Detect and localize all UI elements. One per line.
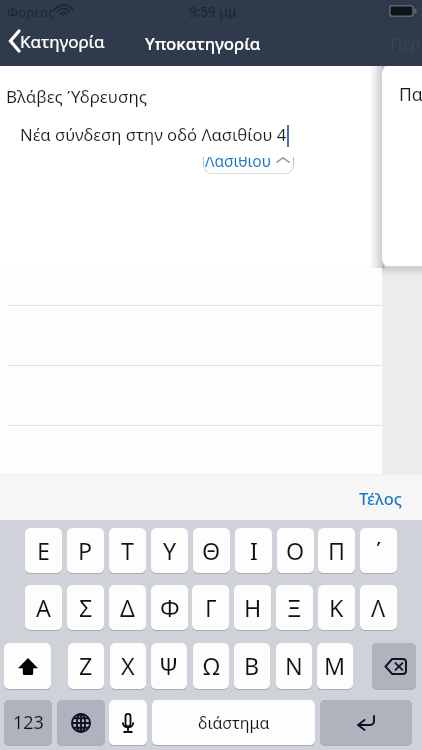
button[interactable]: [4, 643, 51, 689]
button[interactable]: Λ: [360, 585, 397, 630]
button[interactable]: Κ: [318, 585, 355, 630]
button[interactable]: διάστημα: [152, 700, 315, 745]
staticText: Τ: [121, 535, 134, 567]
staticText: Υποκατηγορία: [145, 32, 261, 55]
staticText: Χ: [121, 650, 135, 682]
button[interactable]: Θ: [193, 528, 230, 573]
staticText: ΄: [376, 535, 382, 567]
staticText: Φ: [160, 592, 180, 624]
staticText: διάστημα: [198, 712, 270, 734]
button[interactable]: Α: [25, 585, 62, 630]
button[interactable]: Ξ: [276, 585, 313, 630]
staticText: Ν: [285, 650, 303, 682]
button[interactable]: Ο: [277, 528, 314, 573]
staticText: Π: [328, 535, 346, 567]
button[interactable]: [109, 700, 147, 745]
staticText: Β: [244, 650, 260, 682]
staticText: Μ: [324, 650, 346, 682]
button[interactable]: Ζ: [68, 643, 104, 689]
staticText: Πα: [399, 82, 422, 106]
button[interactable]: 123: [4, 700, 52, 745]
staticText: Ε: [37, 535, 50, 567]
staticText: 123: [13, 710, 44, 735]
staticText: Ξ: [287, 592, 302, 624]
button[interactable]: Β: [234, 643, 270, 689]
staticText: Σ: [79, 592, 93, 624]
button[interactable]: Η: [234, 585, 271, 630]
button[interactable]: Π: [318, 528, 355, 573]
staticText: Ο: [286, 535, 305, 567]
staticText: Φορέας: [7, 3, 55, 21]
button[interactable]: Λασιθίου: [203, 157, 294, 174]
button[interactable]: Τ: [109, 528, 146, 573]
staticText: Θ: [202, 535, 221, 567]
button[interactable]: Ε: [25, 528, 62, 573]
button[interactable]: Φ: [151, 585, 188, 630]
button[interactable]: Περ: [390, 32, 421, 55]
staticText: 9:59 μμ: [189, 3, 237, 21]
staticText: Α: [36, 592, 51, 624]
button[interactable]: [372, 643, 416, 689]
button[interactable]: Γ: [192, 585, 229, 630]
button[interactable]: Ν: [276, 643, 312, 689]
button[interactable]: Πα: [382, 66, 422, 266]
button[interactable]: Ι: [235, 528, 272, 573]
staticText: Κ: [329, 592, 344, 624]
staticText: Βλάβες Ύδρευσης: [6, 85, 148, 108]
staticText: Κατηγορία: [20, 30, 105, 53]
button[interactable]: Κατηγορία: [8, 29, 106, 53]
staticText: Ω: [203, 650, 220, 682]
button[interactable]: Ρ: [67, 528, 104, 573]
staticText: Τέλος: [359, 487, 402, 509]
button[interactable]: Δ: [109, 585, 146, 630]
staticText: Ι: [250, 535, 258, 567]
button[interactable]: Τέλος: [351, 481, 410, 515]
staticText: Ψ: [159, 650, 179, 682]
staticText: Γ: [205, 592, 217, 624]
staticText: Η: [244, 592, 262, 624]
staticText: Λ: [371, 592, 386, 624]
staticText: Δ: [120, 592, 135, 624]
staticText: Ρ: [78, 535, 93, 567]
button[interactable]: ΄: [360, 528, 397, 573]
button[interactable]: Υ: [151, 528, 188, 573]
staticText: Υ: [163, 535, 177, 567]
button[interactable]: Χ: [110, 643, 146, 689]
button[interactable]: Ω: [193, 643, 229, 689]
button[interactable]: Μ: [317, 643, 353, 689]
button[interactable]: [57, 700, 105, 745]
staticText: Λασιθίου: [205, 157, 271, 167]
button[interactable]: Σ: [67, 585, 104, 630]
button[interactable]: Ψ: [151, 643, 187, 689]
button[interactable]: [320, 700, 412, 745]
staticText: Νέα σύνδεση στην οδό Λασιθίου 4: [20, 123, 287, 146]
staticText: Ζ: [79, 650, 93, 682]
